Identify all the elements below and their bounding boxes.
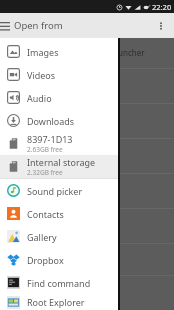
button[interactable]: Internal storage — [0, 155, 118, 178]
staticText: Audio — [27, 92, 52, 104]
button[interactable]: Downloads — [0, 109, 118, 132]
button[interactable]: Navigation menu — [0, 15, 15, 37]
button[interactable]: Videos — [0, 63, 118, 86]
staticText: Downloads — [27, 115, 75, 127]
button[interactable]: Dropbox — [0, 248, 118, 271]
staticText: 2.63GB free — [27, 145, 63, 154]
staticText: Images — [27, 46, 59, 58]
button[interactable]: Gallery — [0, 225, 118, 248]
button[interactable]: More options — [151, 16, 171, 36]
button[interactable]: 8397-1D13 — [0, 132, 118, 155]
button[interactable]: uncher — [118, 13, 174, 310]
staticText: Root Explorer — [27, 296, 85, 308]
button[interactable]: Images — [0, 40, 118, 63]
button[interactable]: Audio — [0, 86, 118, 109]
staticText: Dropbox — [27, 254, 64, 266]
button[interactable]: Root Explorer — [0, 294, 118, 310]
staticText: 22:20 — [152, 2, 172, 12]
staticText: uncher — [118, 47, 145, 58]
button[interactable]: Contacts — [0, 202, 118, 225]
staticText: 2.32GB free — [27, 168, 63, 177]
staticText: Videos — [27, 69, 56, 81]
staticText: Find command — [27, 277, 91, 289]
staticText: Gallery — [27, 231, 57, 243]
staticText: Sound picker — [27, 185, 83, 197]
staticText: 8397-1D13 — [27, 133, 73, 145]
button[interactable]: Find command — [0, 271, 118, 294]
staticText: Open from — [14, 19, 63, 32]
button[interactable]: Sound picker — [0, 179, 118, 202]
staticText: Internal storage — [27, 156, 96, 168]
staticText: Contacts — [27, 208, 64, 220]
